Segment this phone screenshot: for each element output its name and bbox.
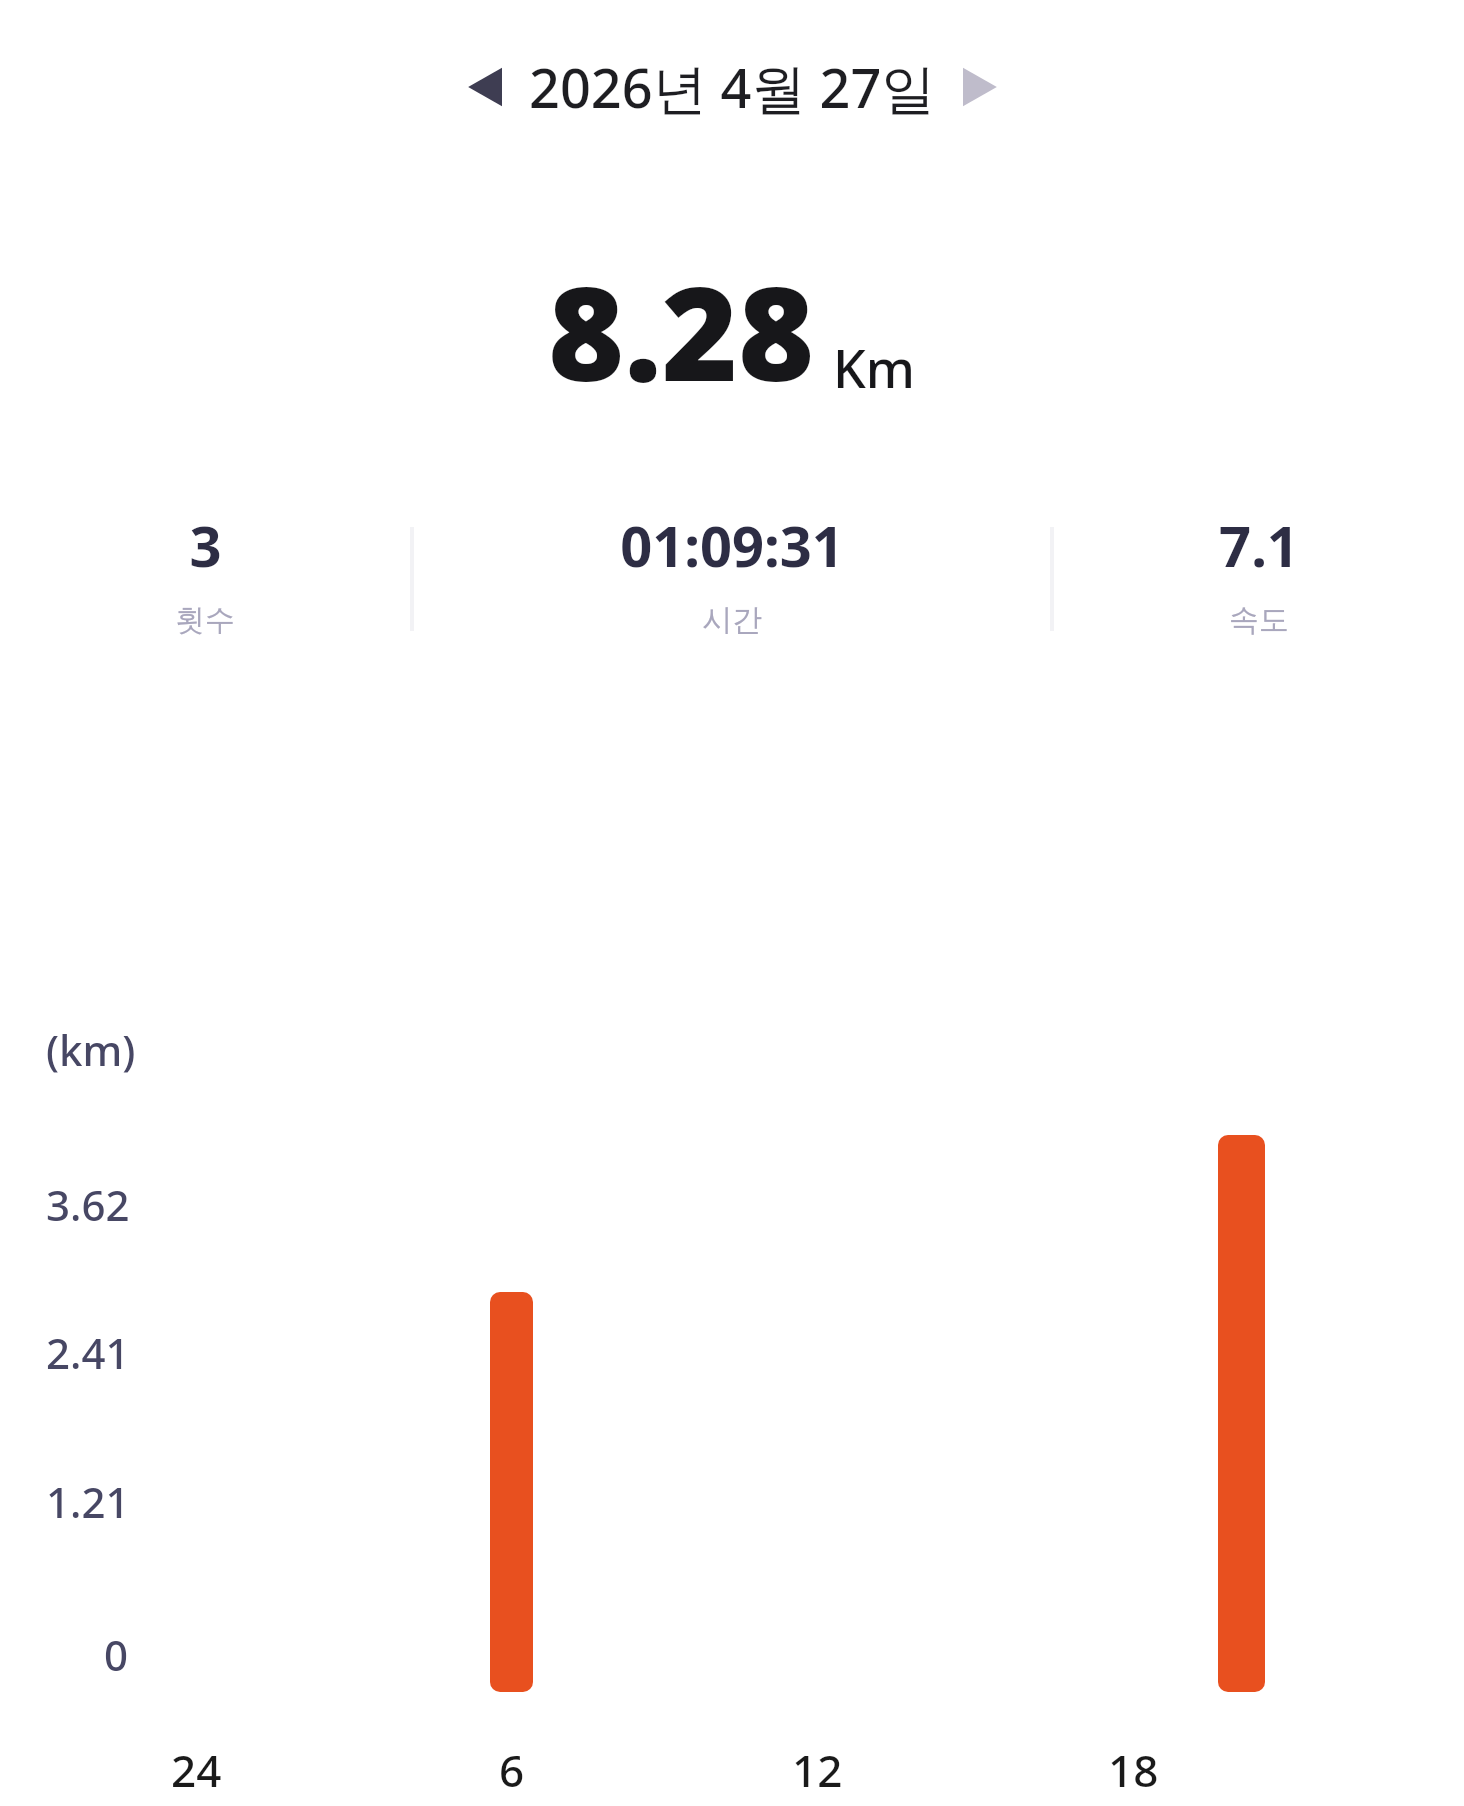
staticText: 6 bbox=[499, 1740, 525, 1800]
staticText: 01:09:31 bbox=[620, 507, 844, 583]
button[interactable]: 3 bbox=[0, 507, 410, 639]
button[interactable]: Next day bbox=[952, 58, 1010, 116]
staticText: 18 bbox=[1108, 1740, 1159, 1800]
button[interactable]: 01:09:31 bbox=[414, 507, 1050, 639]
staticText: Km bbox=[833, 332, 916, 403]
staticText: 3.62 bbox=[46, 1176, 130, 1233]
staticText: 횟수 bbox=[175, 601, 235, 639]
staticText: (km) bbox=[46, 1021, 136, 1078]
staticText: 12 bbox=[792, 1740, 843, 1800]
button[interactable]: 7.1 bbox=[1054, 507, 1464, 639]
staticText: 2.41 bbox=[46, 1324, 130, 1381]
staticText: 7.1 bbox=[1219, 507, 1299, 583]
button[interactable]: (km) bbox=[0, 1018, 1464, 1806]
staticText: 8.28 bbox=[548, 242, 815, 419]
staticText: 3 bbox=[189, 507, 222, 583]
button[interactable]: Previous day bbox=[455, 58, 513, 116]
staticText: 0 bbox=[104, 1626, 129, 1683]
staticText: 24 bbox=[171, 1740, 222, 1800]
staticText: 시간 bbox=[702, 601, 762, 639]
staticText: 2026년 4월 27일 bbox=[529, 50, 936, 124]
staticText: 1.21 bbox=[46, 1473, 130, 1530]
button[interactable]: 8.28 bbox=[0, 242, 1464, 419]
staticText: 속도 bbox=[1229, 601, 1289, 639]
